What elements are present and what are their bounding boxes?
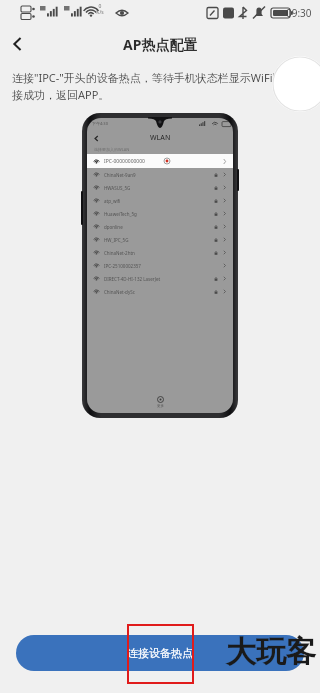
button[interactable]: Back <box>0 26 36 62</box>
button[interactable]: ChinaNet-dySc <box>87 285 233 298</box>
staticText: 09:30 <box>286 6 312 20</box>
staticText: HWASUS_5G <box>104 185 131 191</box>
staticText: 下午4:30 <box>92 121 108 126</box>
staticText: ChinaNet-9an9 <box>104 172 136 178</box>
staticText: 大玩客 <box>226 633 316 671</box>
staticText: 更多 <box>157 404 164 408</box>
staticText: HuaweiTech_5g <box>104 211 137 217</box>
button[interactable]: HWASUS_5G <box>87 181 233 194</box>
button[interactable]: HuaweiTech_5g <box>87 207 233 220</box>
button[interactable]: IPC-25100002357 <box>87 259 233 272</box>
button[interactable]: IPC-00000000000 <box>87 154 233 168</box>
staticText: ChinaNet-2htn <box>104 250 135 256</box>
staticText: 选择要加入的WLAN <box>94 147 130 152</box>
button[interactable]: atp_wifi <box>87 194 233 207</box>
staticText: 连接设备热点 <box>127 646 193 660</box>
button[interactable]: 连接设备热点 <box>16 635 304 671</box>
staticText: atp_wifi <box>104 198 121 204</box>
button[interactable]: DIRECT-4D-HI-132 LaserJet <box>87 272 233 285</box>
staticText: AP热点配置 <box>123 35 198 54</box>
staticText: ChinaNet-dySc <box>104 289 135 295</box>
button[interactable]: ChinaNet-2htn <box>87 246 233 259</box>
button[interactable]: ChinaNet-9an9 <box>87 168 233 181</box>
staticText: HW_IPC_5G <box>104 237 129 243</box>
staticText: IPC-00000000000 <box>104 158 145 165</box>
staticText: dponline <box>104 224 123 230</box>
staticText: WLAN <box>150 133 171 143</box>
staticText: 0 K/s <box>96 3 104 16</box>
staticText: DIRECT-4D-HI-132 LaserJet <box>104 276 161 282</box>
button[interactable]: dponline <box>87 220 233 233</box>
button[interactable]: HW_IPC_5G <box>87 233 233 246</box>
staticText: IPC-25100002357 <box>104 263 141 269</box>
staticText: 连接"IPC-"开头的设备热点，等待手机状态栏显示WiFi图标连接成功，返回AP… <box>12 70 308 103</box>
